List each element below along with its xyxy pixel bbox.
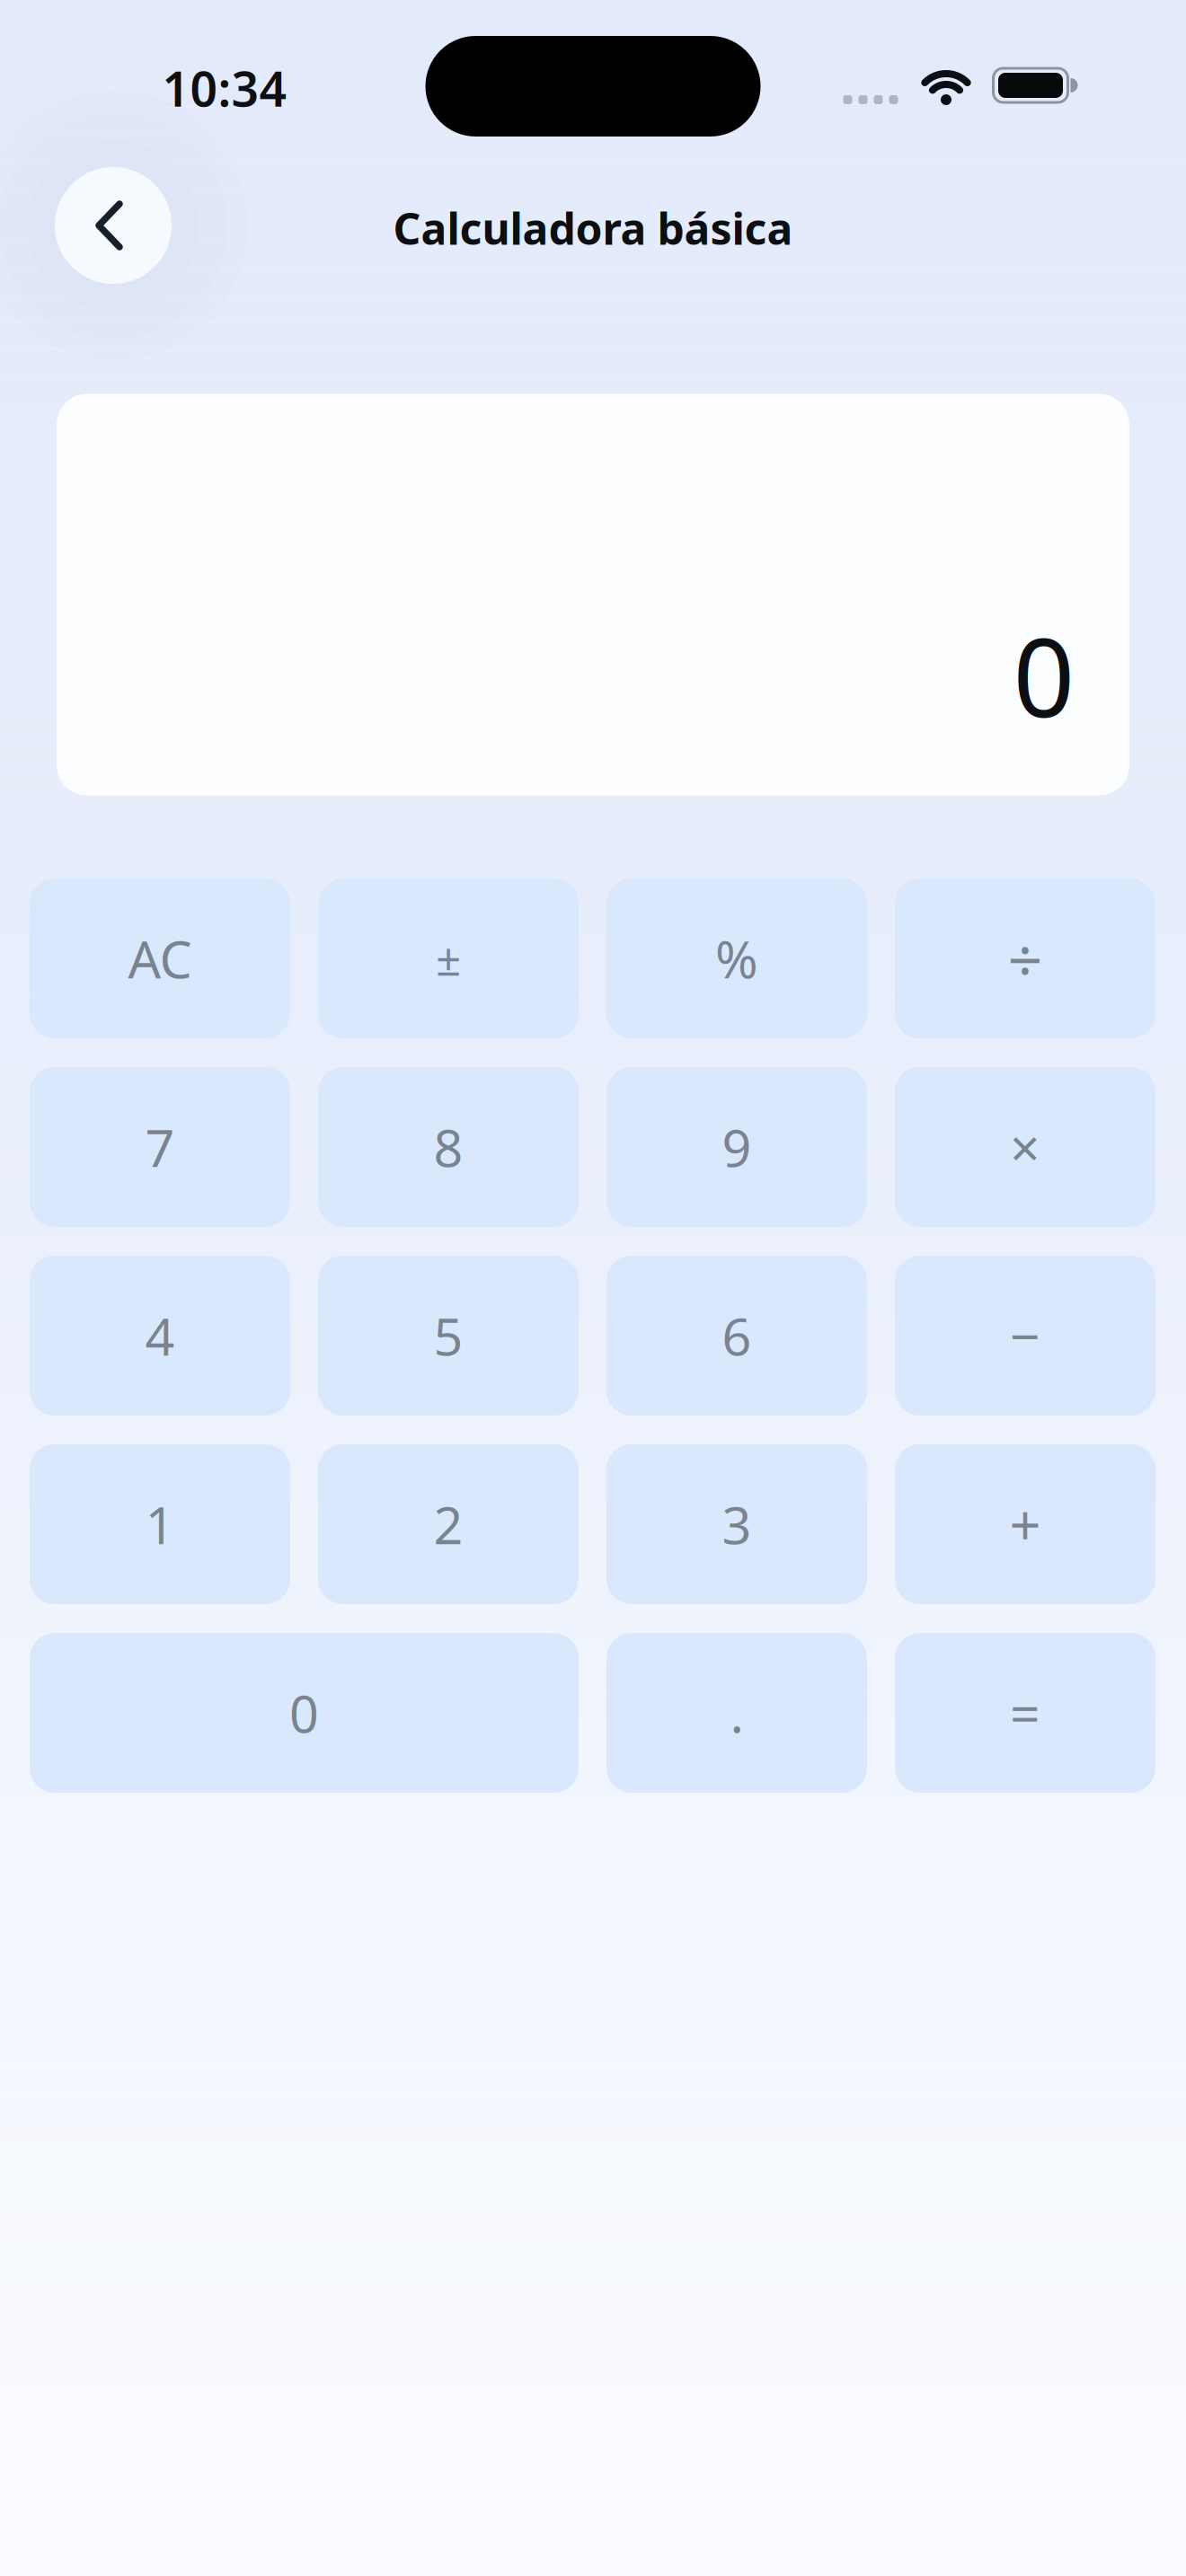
- button[interactable]: AC: [30, 878, 290, 1038]
- button[interactable]: 8: [318, 1067, 579, 1227]
- button[interactable]: −: [895, 1256, 1155, 1416]
- staticText: 3: [722, 1490, 752, 1558]
- staticText: AC: [128, 924, 192, 992]
- button[interactable]: 7: [30, 1067, 290, 1227]
- staticText: +: [1009, 1488, 1041, 1561]
- staticText: .: [730, 1679, 743, 1747]
- staticText: 7: [145, 1113, 175, 1181]
- button[interactable]: 6: [606, 1256, 867, 1416]
- button[interactable]: ±: [318, 878, 579, 1038]
- button[interactable]: %: [606, 878, 867, 1038]
- button[interactable]: 9: [606, 1067, 867, 1227]
- button[interactable]: 4: [30, 1256, 290, 1416]
- staticText: Calculadora básica: [393, 199, 793, 257]
- button[interactable]: Back: [55, 167, 172, 284]
- staticText: −: [1010, 1301, 1040, 1371]
- button[interactable]: 5: [318, 1256, 579, 1416]
- staticText: 9: [722, 1113, 752, 1181]
- button[interactable]: =: [895, 1633, 1155, 1793]
- staticText: =: [1010, 1678, 1040, 1748]
- button[interactable]: ÷: [895, 878, 1155, 1038]
- staticText: %: [715, 924, 758, 992]
- button[interactable]: 0: [30, 1633, 579, 1793]
- staticText: 4: [145, 1301, 175, 1370]
- button[interactable]: .: [606, 1633, 867, 1793]
- button[interactable]: +: [895, 1444, 1155, 1604]
- staticText: ×: [1010, 1112, 1040, 1182]
- staticText: 0: [1013, 604, 1075, 747]
- button[interactable]: ×: [895, 1067, 1155, 1227]
- staticText: 0: [289, 1679, 319, 1747]
- button[interactable]: 1: [30, 1444, 290, 1604]
- staticText: 10:34: [162, 56, 287, 120]
- staticText: 1: [145, 1490, 175, 1558]
- staticText: 2: [434, 1490, 463, 1558]
- staticText: 8: [434, 1113, 463, 1181]
- staticText: ±: [436, 929, 461, 988]
- button[interactable]: 2: [318, 1444, 579, 1604]
- button[interactable]: 3: [606, 1444, 867, 1604]
- staticText: ÷: [1008, 918, 1043, 999]
- staticText: 6: [722, 1301, 752, 1370]
- staticText: 5: [434, 1301, 463, 1370]
